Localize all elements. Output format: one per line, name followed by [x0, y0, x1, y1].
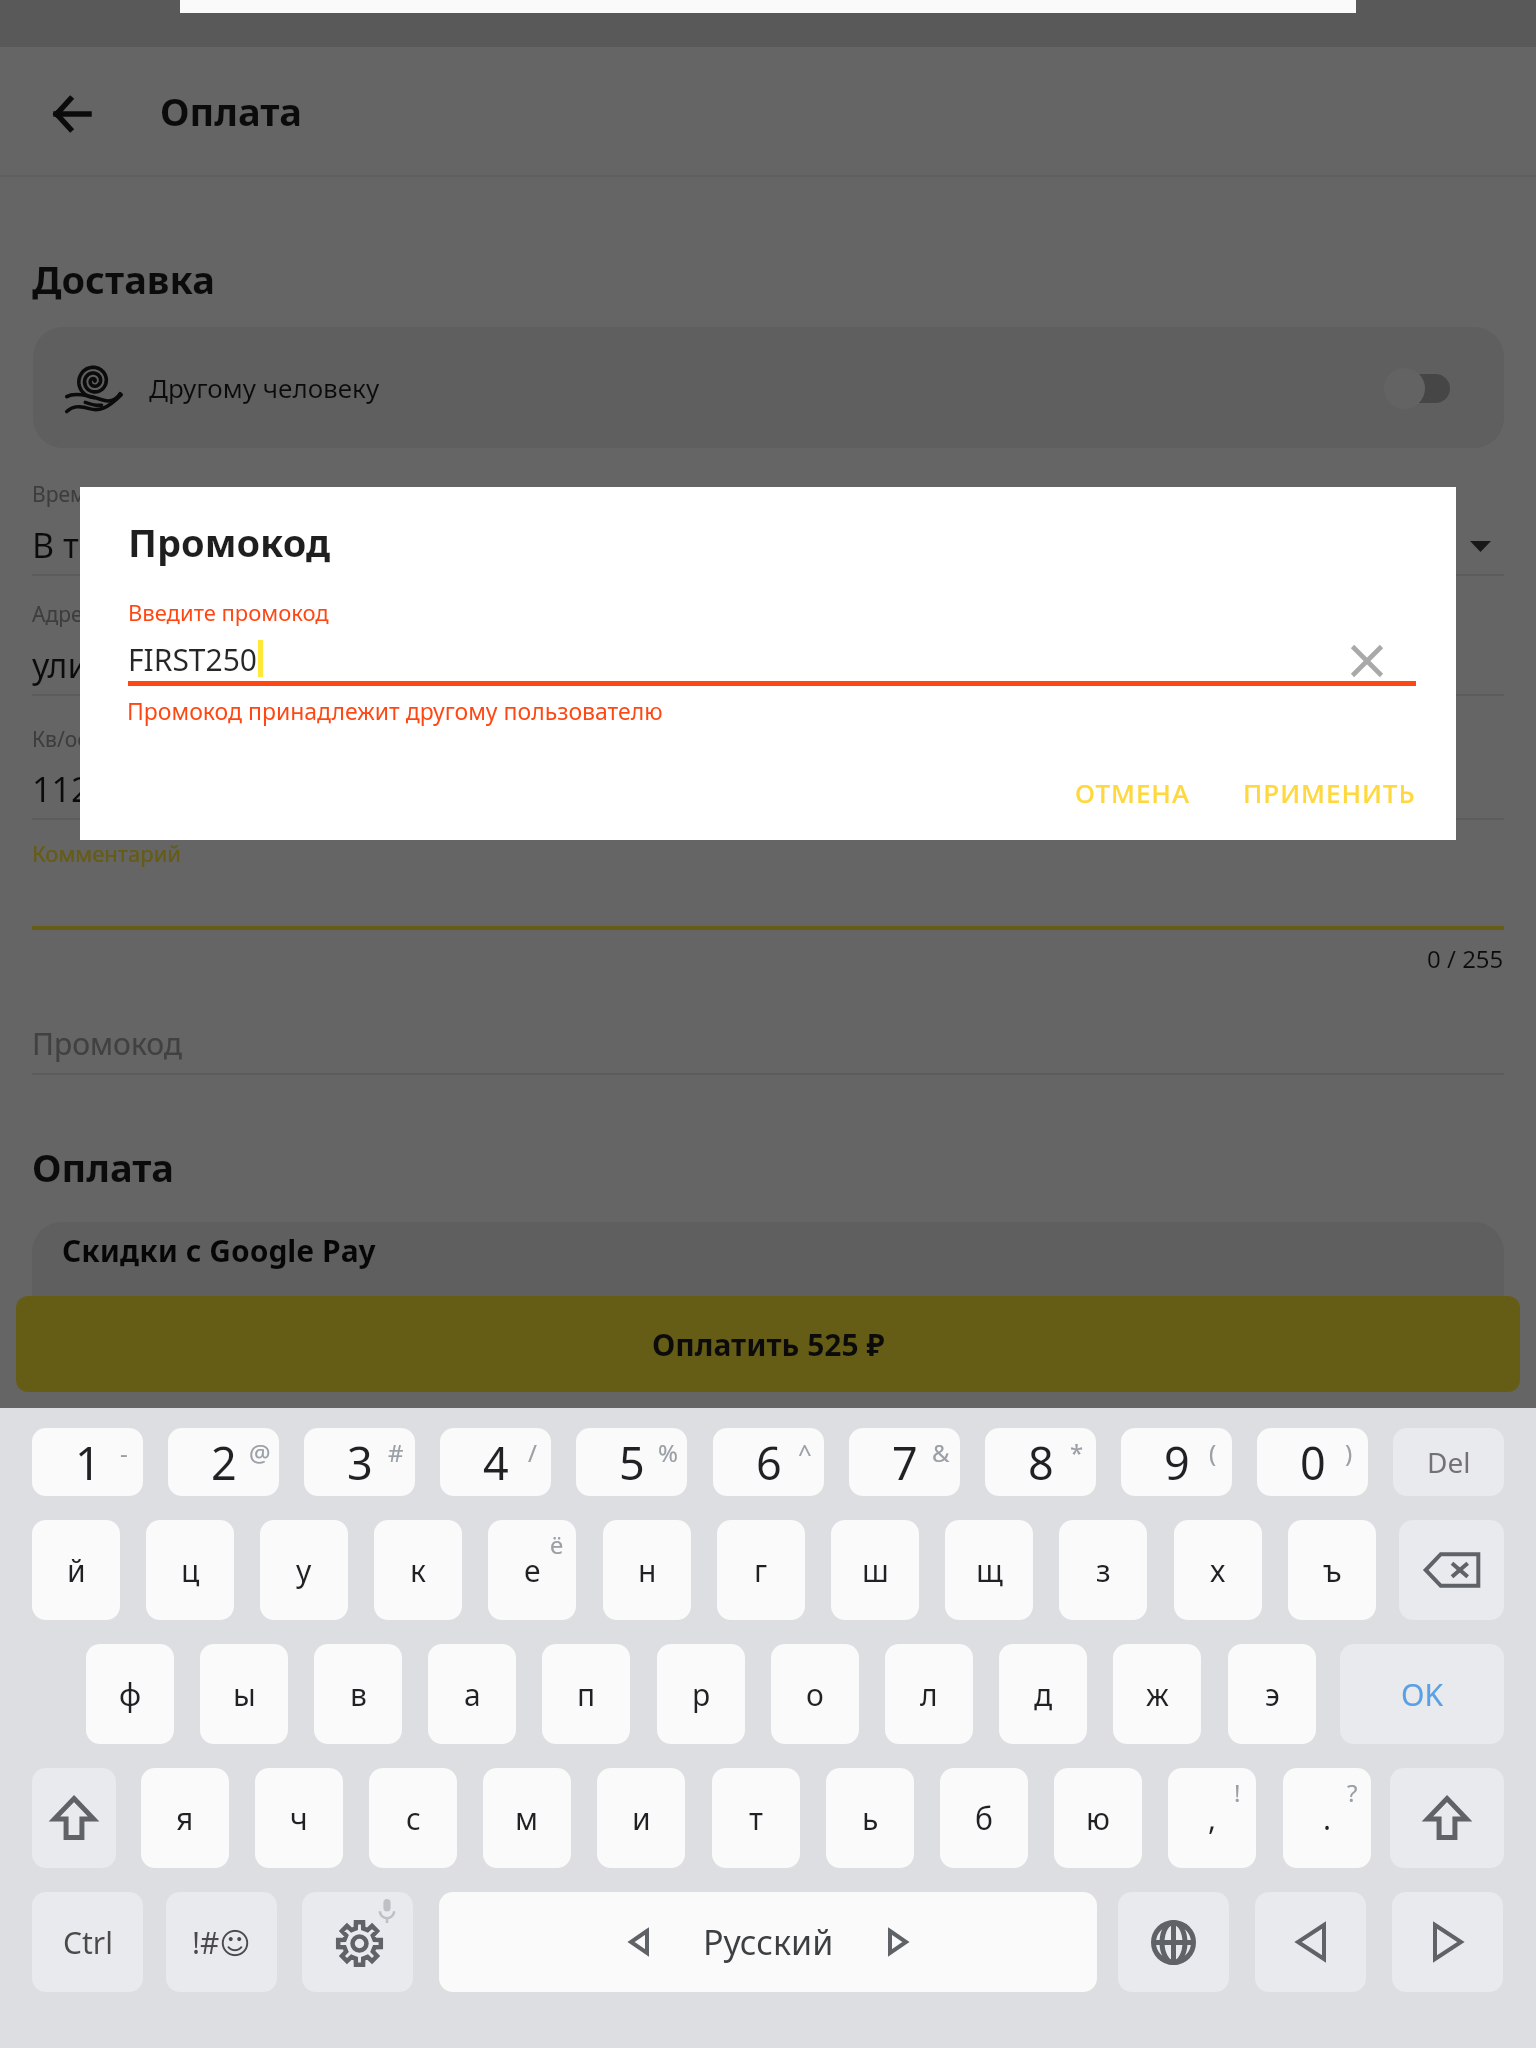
- button[interactable]: 7: [849, 1428, 960, 1496]
- staticText: 5: [619, 1432, 645, 1493]
- button[interactable]: с: [369, 1768, 457, 1868]
- staticText: Промокод: [128, 516, 331, 568]
- staticText: 0: [1300, 1432, 1326, 1493]
- button[interactable]: 5: [576, 1428, 687, 1496]
- button[interactable]: г: [717, 1520, 805, 1620]
- button[interactable]: ОТМЕНА: [1053, 764, 1211, 820]
- staticText: Доставка: [32, 253, 215, 305]
- staticText: OK: [1401, 1674, 1443, 1715]
- button[interactable]: д: [999, 1644, 1087, 1744]
- button[interactable]: Другому человеку: [33, 327, 1504, 448]
- staticText: Другому человеку: [149, 370, 380, 405]
- staticText: л: [920, 1674, 938, 1715]
- button[interactable]: 2: [168, 1428, 279, 1496]
- button[interactable]: Clear text: [1336, 630, 1398, 692]
- button[interactable]: left: [1255, 1892, 1366, 1992]
- button[interactable]: н: [603, 1520, 691, 1620]
- button[interactable]: з: [1059, 1520, 1147, 1620]
- button[interactable]: shift: [1390, 1768, 1504, 1868]
- button[interactable]: Оплатить 525 ₽: [16, 1296, 1520, 1392]
- button[interactable]: OK: [1340, 1644, 1504, 1744]
- button[interactable]: ь: [826, 1768, 914, 1868]
- staticText: Русский: [703, 1919, 834, 1965]
- button[interactable]: ъ: [1288, 1520, 1376, 1620]
- staticText: В течение дня: [32, 522, 267, 568]
- button[interactable]: Ctrl: [32, 1892, 143, 1992]
- staticText: ОТМЕНА: [1075, 775, 1190, 810]
- button[interactable]: у: [260, 1520, 348, 1620]
- button[interactable]: п: [542, 1644, 630, 1744]
- staticText: 1: [75, 1432, 101, 1493]
- button[interactable]: globe: [1118, 1892, 1229, 1992]
- button[interactable]: е: [488, 1520, 576, 1620]
- button[interactable]: ф: [86, 1644, 174, 1744]
- button[interactable]: backspace: [1399, 1520, 1504, 1620]
- staticText: 0 / 255: [1427, 942, 1504, 975]
- staticText: #: [388, 1436, 404, 1469]
- button[interactable]: ы: [200, 1644, 288, 1744]
- button[interactable]: й: [32, 1520, 120, 1620]
- button[interactable]: м: [483, 1768, 571, 1868]
- staticText: Скидки с Google Pay: [62, 1230, 376, 1271]
- staticText: ,: [1208, 1798, 1217, 1839]
- button[interactable]: 9: [1121, 1428, 1232, 1496]
- button[interactable]: 8: [985, 1428, 1096, 1496]
- staticText: -: [120, 1436, 128, 1469]
- button[interactable]: х: [1174, 1520, 1262, 1620]
- button[interactable]: ш: [831, 1520, 919, 1620]
- staticText: ж: [1146, 1674, 1169, 1715]
- button[interactable]: 3: [304, 1428, 415, 1496]
- staticText: .: [1323, 1798, 1332, 1839]
- button[interactable]: .: [1283, 1768, 1371, 1868]
- button[interactable]: т: [712, 1768, 800, 1868]
- button[interactable]: Space: [439, 1892, 1097, 1992]
- button[interactable]: к: [374, 1520, 462, 1620]
- button[interactable]: и: [597, 1768, 685, 1868]
- button[interactable]: 4: [440, 1428, 551, 1496]
- staticText: Время: [32, 480, 99, 509]
- staticText: Адрес: [32, 600, 93, 629]
- staticText: у: [296, 1550, 312, 1591]
- button[interactable]: ч: [255, 1768, 343, 1868]
- staticText: ё: [550, 1528, 564, 1561]
- staticText: ф: [119, 1674, 142, 1715]
- button[interactable]: о: [771, 1644, 859, 1744]
- button[interactable]: shift: [32, 1768, 116, 1868]
- staticText: ч: [290, 1798, 308, 1839]
- button[interactable]: э: [1228, 1644, 1316, 1744]
- staticText: /: [528, 1436, 537, 1469]
- staticText: Оплатить 525 ₽: [652, 1324, 885, 1365]
- button[interactable]: right: [1392, 1892, 1503, 1992]
- button[interactable]: а: [428, 1644, 516, 1744]
- button[interactable]: 0: [1257, 1428, 1368, 1496]
- button[interactable]: л: [885, 1644, 973, 1744]
- button[interactable]: Del: [1393, 1428, 1504, 1496]
- button[interactable]: Скидки с Google Pay: [32, 1222, 1504, 1342]
- button[interactable]: ПРИМЕНИТЬ: [1234, 764, 1424, 820]
- staticText: Del: [1427, 1443, 1471, 1481]
- button[interactable]: 1: [32, 1428, 143, 1496]
- button[interactable]: в: [314, 1644, 402, 1744]
- staticText: &: [932, 1436, 950, 1469]
- button[interactable]: ю: [1054, 1768, 1142, 1868]
- button[interactable]: я: [141, 1768, 229, 1868]
- staticText: ъ: [1323, 1550, 1342, 1591]
- button[interactable]: ,: [1168, 1768, 1256, 1868]
- button[interactable]: Back: [28, 70, 116, 158]
- staticText: н: [638, 1550, 657, 1591]
- button[interactable]: 6: [713, 1428, 824, 1496]
- button[interactable]: р: [657, 1644, 745, 1744]
- button[interactable]: ц: [146, 1520, 234, 1620]
- button[interactable]: !#☺: [166, 1892, 277, 1992]
- staticText: ?: [1347, 1776, 1358, 1809]
- staticText: @: [249, 1436, 271, 1469]
- button[interactable]: ж: [1113, 1644, 1201, 1744]
- button[interactable]: щ: [945, 1520, 1033, 1620]
- staticText: 8: [1028, 1432, 1054, 1493]
- staticText: (: [1209, 1436, 1217, 1469]
- staticText: 112: [32, 766, 91, 812]
- button[interactable]: б: [940, 1768, 1028, 1868]
- button[interactable]: gear: [302, 1892, 413, 1992]
- staticText: я: [176, 1798, 194, 1839]
- staticText: ^: [798, 1436, 812, 1469]
